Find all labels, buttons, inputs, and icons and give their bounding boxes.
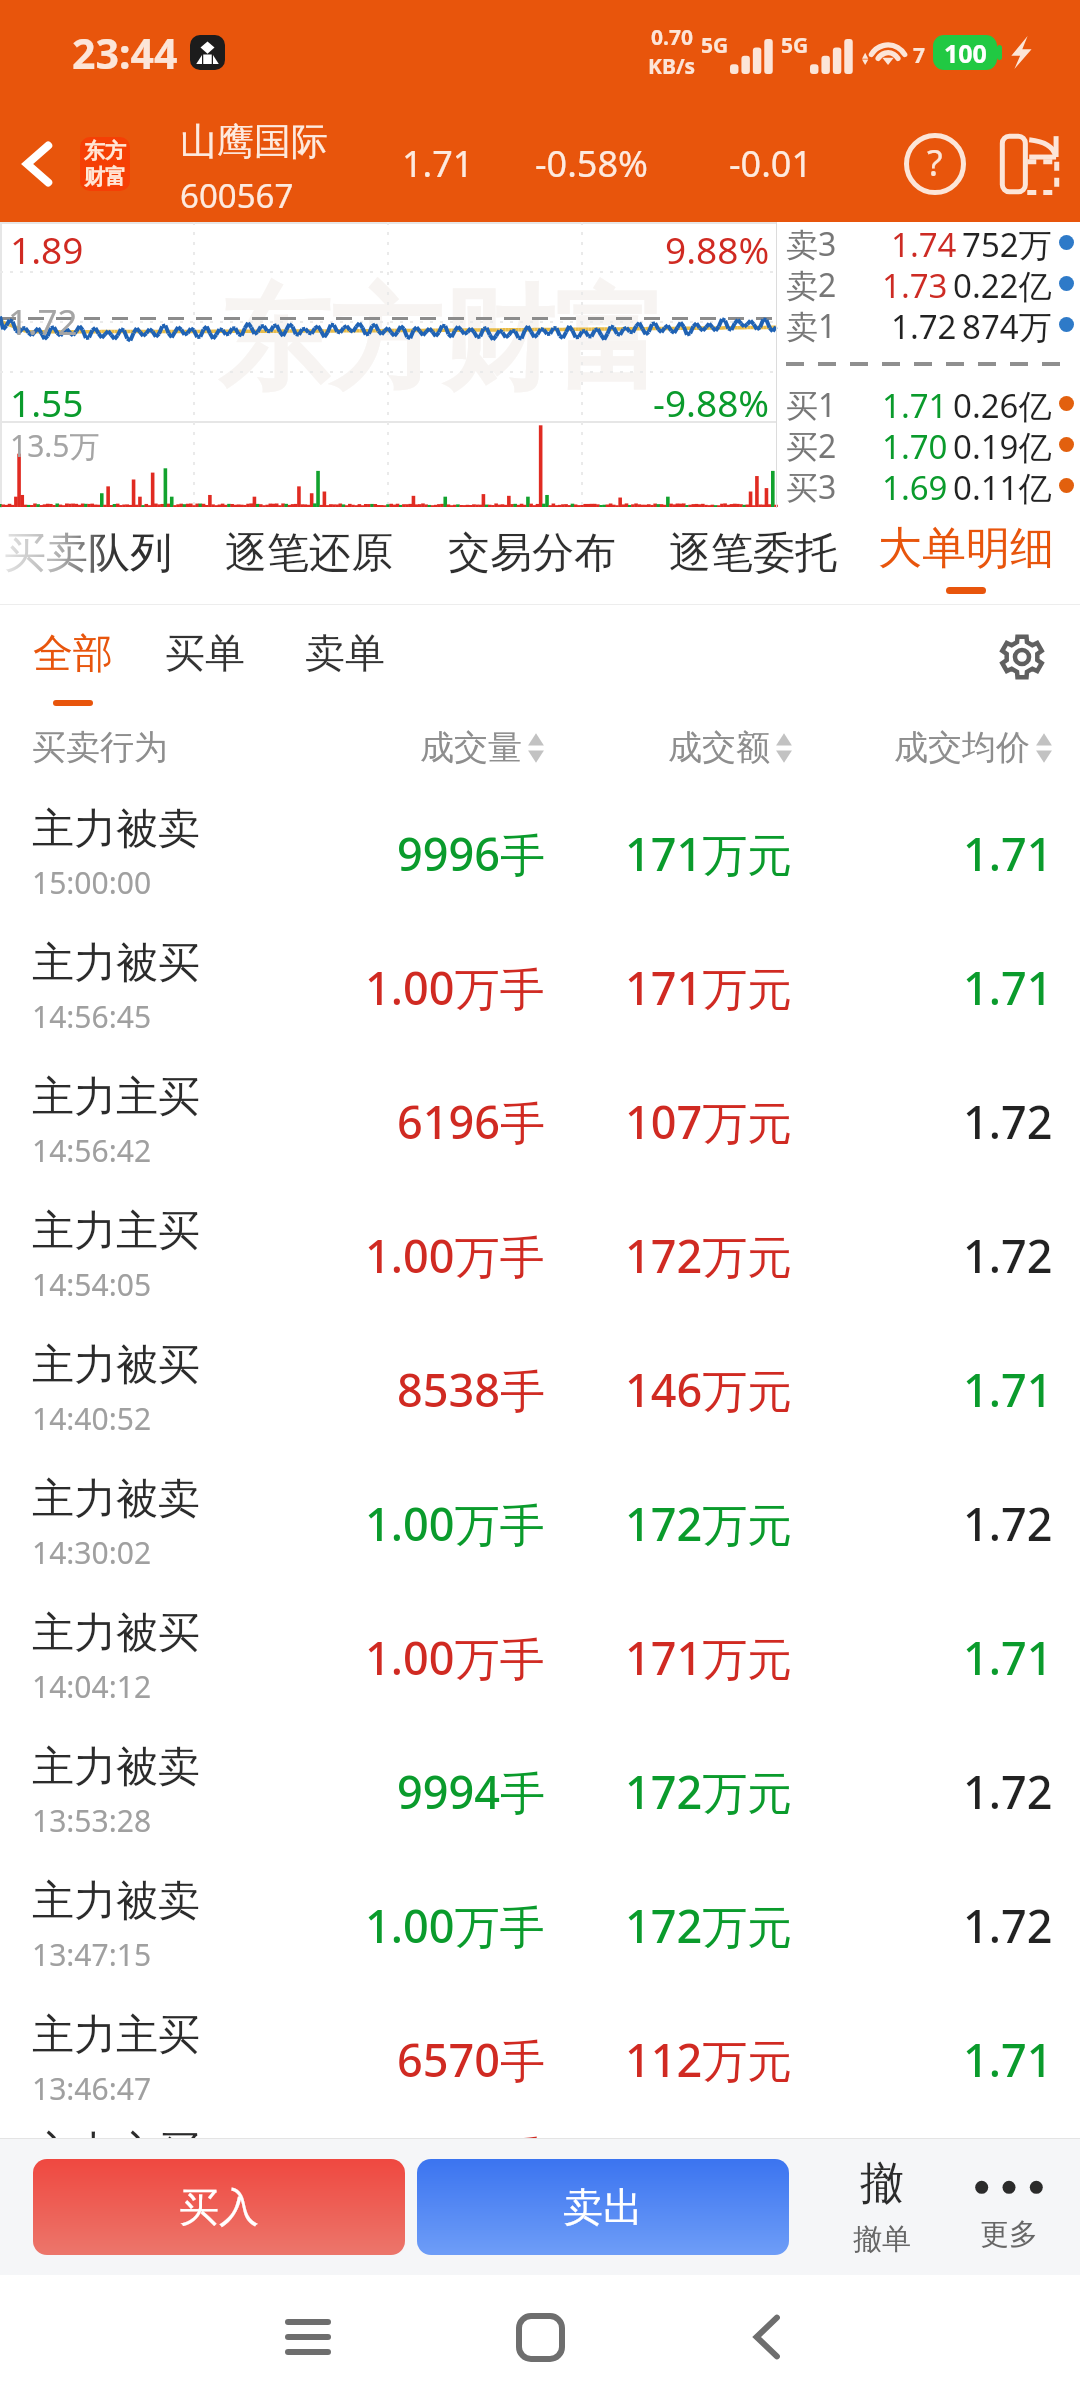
button[interactable]: 卖1 [786,304,1074,345]
staticText: 1.69 [882,465,948,506]
button[interactable]: 逐笔还原 [213,508,409,605]
staticText: 14:30:02 [32,1532,152,1573]
staticText: 东方财富 [218,270,666,411]
staticText: 172万元 [625,1895,793,1956]
staticText: 171万元 [625,1627,793,1688]
button[interactable]: 主力主买 [0,2126,1080,2138]
staticText: 172万元 [625,1761,793,1822]
button[interactable]: Back [707,2287,827,2387]
staticText: 600567 [180,173,294,218]
button[interactable]: 撤 [812,2138,952,2275]
staticText: 主力被卖 [32,1473,200,1526]
button[interactable]: 大单明细 [866,508,1066,605]
staticText: 东方 财富 [84,138,126,190]
staticText: 成交额 [668,726,770,769]
button[interactable]: 卖3 [786,222,1074,263]
button[interactable]: 主力主买 [0,1188,1080,1322]
button[interactable]: 买单 [165,628,245,678]
staticText: 主力主买 [32,2009,200,2062]
staticText: 主力被买 [32,1339,200,1392]
button[interactable]: 交易分布 [436,508,632,605]
staticText: 卖出 [563,2182,643,2232]
staticText: ? [927,138,943,187]
staticText: 1.00万手 [365,1493,545,1554]
button[interactable]: Back [0,105,76,222]
staticText: 买1 [786,383,837,424]
staticText: 107万元 [625,1091,793,1152]
button[interactable]: 卖2 [786,263,1074,304]
staticText: 主力主买 [32,2126,200,2138]
button[interactable]: 全部 [33,628,113,706]
staticText: 0.22亿 [953,263,1052,304]
button[interactable]: Home [480,2287,600,2387]
button[interactable]: 成交额 [473,726,793,769]
staticText: -0.58% [535,139,648,188]
staticText: 100 [944,36,987,70]
staticText: 14:56:45 [32,996,152,1037]
staticText: 1.71 [882,383,948,424]
button[interactable]: 主力被买 [0,1322,1080,1456]
button[interactable]: 买卖队列 [0,508,188,605]
staticText: 13.5万 [10,425,100,466]
staticText: 146万元 [625,1359,793,1420]
staticText: 1.55 [10,377,84,427]
staticText: KB/s [648,52,696,81]
staticText: 0.19亿 [953,424,1052,465]
staticText: 172万元 [625,1493,793,1554]
staticText: 1.00万手 [365,1895,545,1956]
staticText: 买卖队列 [4,527,172,580]
button[interactable]: 逐笔委托 [657,508,853,605]
button[interactable]: 主力被买 [0,920,1080,1054]
button[interactable]: 主力被买 [0,1590,1080,1724]
button[interactable]: 主力主买 [0,1054,1080,1188]
staticText: 成交量 [420,726,522,769]
staticText: 5G [781,31,809,60]
staticText: 1.71 [963,2029,1053,2090]
button[interactable]: Recent apps [248,2287,368,2387]
staticText: 112万元 [625,2029,793,2090]
button[interactable]: 买1 [786,383,1074,424]
button[interactable]: 主力被卖 [0,1858,1080,1992]
button[interactable]: Settings [986,621,1058,693]
button[interactable]: 买3 [786,465,1074,506]
staticText: 0.11亿 [953,465,1052,506]
staticText: 主力被卖 [32,1741,200,1794]
staticText: 交易分布 [448,527,616,580]
button[interactable]: 更多 [940,2138,1078,2275]
button[interactable]: 成交量 [225,726,545,769]
staticText: 1.72 [8,298,78,346]
staticText: -0.01 [729,139,813,188]
button[interactable]: 买2 [786,424,1074,465]
staticText: 1.71 [963,1359,1053,1420]
staticText: 14:40:52 [32,1398,152,1439]
staticText: 14:56:42 [32,1130,152,1171]
staticText: 15:00:00 [32,862,152,903]
button[interactable]: 买入 [33,2159,405,2255]
button[interactable]: 主力被卖 [0,786,1080,920]
staticText: 成交均价 [894,726,1030,769]
button[interactable]: Help [885,105,985,222]
staticText: 0.26亿 [953,383,1052,424]
button[interactable]: Split screen [978,105,1073,222]
staticText: 14:04:12 [32,1666,152,1707]
staticText: 1.00万手 [365,1225,545,1286]
staticText: 1.72 [963,1493,1053,1554]
button[interactable]: 卖单 [305,628,385,678]
staticText: 1.00万手 [365,2126,545,2138]
button[interactable]: 主力被卖 [0,1724,1080,1858]
staticText: 1.72 [891,304,957,345]
button[interactable]: 主力主买 [0,1992,1080,2126]
staticText: 买卖行为 [32,726,168,769]
button[interactable]: 卖出 [417,2159,789,2255]
staticText: 1.72 [963,1895,1053,1956]
staticText: 6196手 [397,1091,545,1152]
staticText: 1.70 [882,424,948,465]
staticText: 逐笔还原 [225,527,393,580]
staticText: 逐笔委托 [669,527,837,580]
button[interactable]: 主力被卖 [0,1456,1080,1590]
staticText: 全部 [33,628,113,678]
staticText: 1.71 [963,823,1053,884]
button[interactable]: 成交均价 [733,726,1053,769]
